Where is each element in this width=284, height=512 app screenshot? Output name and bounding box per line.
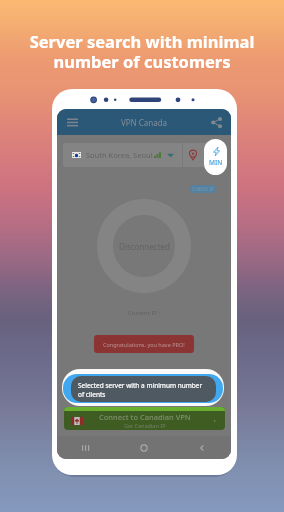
button[interactable]: Back <box>173 436 231 459</box>
button[interactable]: Congratulations, you have PRO! <box>94 335 194 353</box>
button[interactable]: Menu <box>64 114 80 130</box>
staticText: MIN <box>209 158 223 167</box>
staticText: Congratulations, you have PRO! <box>103 341 185 348</box>
button[interactable]: Selected server with a minimum number of… <box>71 376 216 402</box>
button[interactable]: Connect to Canadian VPN <box>64 407 225 430</box>
staticText: VPN Canada <box>80 117 208 128</box>
button[interactable]: Share <box>208 114 224 130</box>
button[interactable]: MIN <box>204 139 227 175</box>
staticText: Current IP : <box>128 309 160 317</box>
staticText: Get Canadian IP <box>124 422 166 429</box>
staticText: CHECK IP <box>192 186 215 193</box>
button[interactable]: Home <box>115 436 173 459</box>
button[interactable]: Location <box>186 148 200 162</box>
button[interactable]: Recents <box>57 436 115 459</box>
staticText: Connect to Canadian VPN <box>99 412 191 422</box>
staticText: Disconnected <box>119 241 170 252</box>
staticText: Selected server with a minimum number of… <box>78 381 208 399</box>
button[interactable]: CHECK IP <box>190 185 216 193</box>
button[interactable]: South Korea, Seoul <box>63 143 225 167</box>
staticText: South Korea, Seoul <box>86 150 153 160</box>
button[interactable]: Connect <box>97 199 191 293</box>
staticText: Server search with minimal number of cus… <box>0 30 284 73</box>
